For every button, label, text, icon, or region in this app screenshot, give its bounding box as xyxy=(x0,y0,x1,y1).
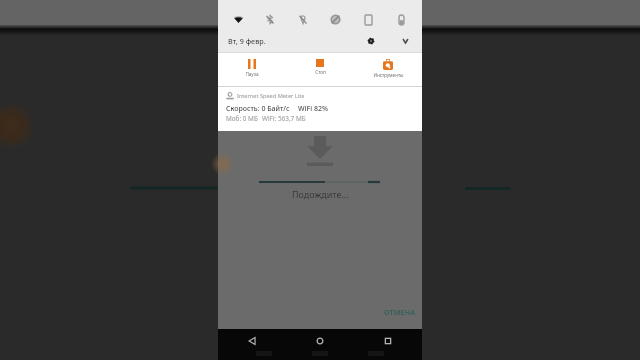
button[interactable]: Settings xyxy=(361,31,381,51)
staticText: Инструменты xyxy=(373,72,404,78)
staticText: ОТМЕНА xyxy=(384,307,416,317)
button[interactable]: Location off xyxy=(286,9,319,30)
button[interactable]: Пауза xyxy=(218,53,286,86)
button[interactable]: Bluetooth off xyxy=(254,9,286,30)
button[interactable]: Battery saver xyxy=(385,9,418,30)
staticText: Пауза xyxy=(245,71,259,77)
staticText: WiFi 82% xyxy=(298,104,328,114)
button[interactable]: Internet Speed Meter Lite xyxy=(218,87,422,131)
button[interactable]: Стоп xyxy=(286,53,354,86)
staticText: Скорость: 0 Байт/с xyxy=(226,104,290,114)
button[interactable]: Expand xyxy=(395,31,415,51)
button[interactable]: Home xyxy=(286,329,354,360)
button[interactable]: Auto rotate xyxy=(352,9,385,30)
staticText: WiFi: 563,7 МБ xyxy=(262,114,306,123)
button[interactable]: ОТМЕНА xyxy=(378,303,422,321)
staticText: Подождите... xyxy=(292,188,349,200)
button[interactable]: Wi-Fi xyxy=(222,9,254,30)
button[interactable]: Do not disturb xyxy=(319,9,352,30)
staticText: Стоп xyxy=(315,69,326,75)
button[interactable]: Recent apps xyxy=(354,329,422,360)
staticText: Internet Speed Meter Lite xyxy=(237,92,305,100)
staticText: Вт, 9 февр. xyxy=(228,36,266,46)
staticText: Моб: 0 МБ xyxy=(226,114,258,123)
button[interactable]: Back xyxy=(218,329,286,360)
button[interactable]: Инструменты xyxy=(354,53,422,86)
